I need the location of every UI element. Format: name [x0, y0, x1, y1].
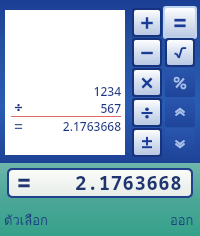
staticText: 1234 [25, 83, 121, 99]
button[interactable]: Equals [163, 6, 197, 39]
button[interactable]: Square root [167, 40, 193, 65]
button[interactable]: Minus [134, 40, 160, 65]
button[interactable]: ออก [170, 210, 194, 231]
staticText: 567 [25, 100, 121, 116]
staticText: ออก [170, 210, 194, 231]
staticText: ตัวเลือก [4, 210, 48, 231]
button[interactable]: Scroll down [165, 128, 195, 157]
button[interactable]: Multiply [134, 70, 160, 95]
staticText: 2.1763668 [25, 118, 121, 134]
button[interactable]: Percent [165, 68, 195, 97]
button[interactable]: 2.1763668 [9, 170, 191, 196]
button[interactable]: ตัวเลือก [4, 210, 48, 231]
button[interactable]: Divide [134, 100, 160, 125]
button[interactable]: Plus [134, 10, 160, 35]
button[interactable]: Scroll up [165, 98, 195, 127]
staticText: 2.1763668 [75, 170, 183, 196]
button[interactable]: Plus minus [134, 130, 160, 155]
